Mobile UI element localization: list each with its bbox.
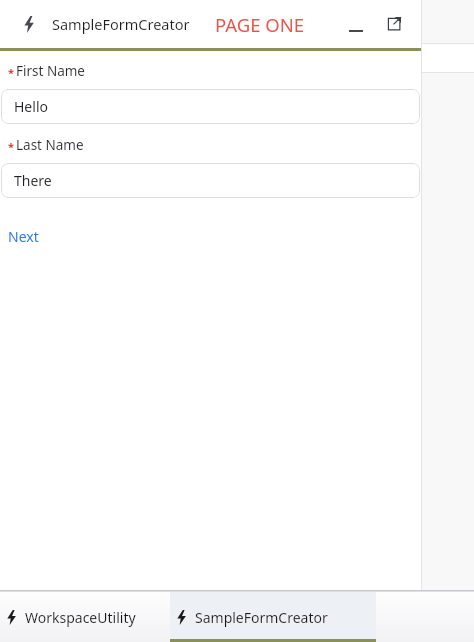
- staticText: There: [14, 171, 52, 190]
- button[interactable]: There: [1, 163, 420, 198]
- button[interactable]: WorkspaceUtility: [0, 592, 170, 642]
- staticText: Last Name: [16, 136, 84, 154]
- button[interactable]: Next: [6, 225, 41, 248]
- button[interactable]: SampleFormCreator: [170, 592, 376, 642]
- button[interactable]: Hello: [1, 89, 420, 124]
- staticText: Next: [8, 227, 39, 246]
- button[interactable]: Open in new window: [379, 4, 409, 44]
- staticText: *: [8, 65, 14, 80]
- staticText: First Name: [16, 62, 85, 80]
- staticText: Hello: [14, 97, 48, 116]
- button[interactable]: Minimize: [343, 4, 369, 44]
- staticText: SampleFormCreator: [52, 14, 190, 34]
- staticText: WorkspaceUtility: [25, 608, 136, 627]
- staticText: PAGE ONE: [215, 12, 305, 37]
- staticText: SampleFormCreator: [195, 608, 328, 627]
- staticText: *: [8, 139, 14, 154]
